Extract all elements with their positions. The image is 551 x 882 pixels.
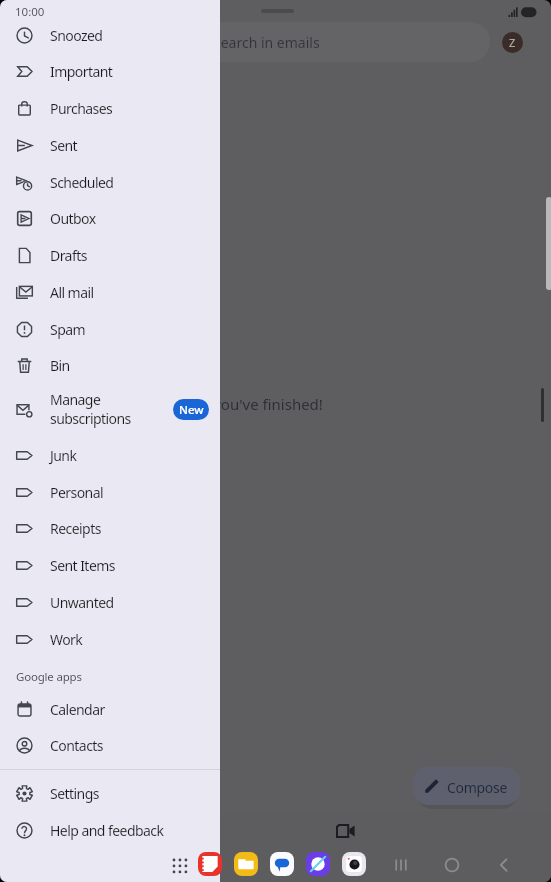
button[interactable]: browser xyxy=(306,852,330,876)
button[interactable]: files xyxy=(234,852,258,876)
button[interactable] xyxy=(100,22,490,62)
staticText: Snoozed xyxy=(50,26,103,45)
button[interactable]: messages xyxy=(270,852,294,876)
button[interactable]: All mail xyxy=(0,274,220,310)
button[interactable]: Scheduled xyxy=(0,164,220,200)
staticText: Sent Items xyxy=(50,556,115,575)
button[interactable]: Home xyxy=(439,852,465,878)
button[interactable]: Manage subscriptions xyxy=(0,388,220,432)
staticText: Junk xyxy=(50,446,77,465)
staticText: Drafts xyxy=(50,246,87,265)
button[interactable]: Recents xyxy=(388,852,414,878)
button[interactable]: Unwanted xyxy=(0,584,220,620)
staticText: All mail xyxy=(50,283,94,302)
button[interactable]: Work xyxy=(0,621,220,657)
staticText: Manage subscriptions xyxy=(50,390,131,428)
staticText: 10:00 xyxy=(15,4,45,20)
button[interactable]: Help and feedback xyxy=(0,812,220,848)
staticText: Work xyxy=(50,630,83,649)
button[interactable]: Account xyxy=(502,32,523,53)
staticText: Outbox xyxy=(50,209,96,228)
button[interactable]: Junk xyxy=(0,437,220,473)
staticText: Purchases xyxy=(50,99,113,118)
button[interactable]: Outbox xyxy=(0,200,220,236)
button[interactable]: Receipts xyxy=(0,510,220,546)
button[interactable]: Contacts xyxy=(0,727,220,763)
staticText: Compose xyxy=(447,778,507,797)
button[interactable]: Personal xyxy=(0,474,220,510)
staticText: Calendar xyxy=(50,700,105,719)
staticText: Search in emails xyxy=(213,33,320,52)
staticText: Help and feedback xyxy=(50,821,164,840)
button[interactable]: Purchases xyxy=(0,90,220,126)
staticText: Unwanted xyxy=(50,593,114,612)
button[interactable]: Important xyxy=(0,53,220,89)
button[interactable]: Back xyxy=(491,852,517,878)
button[interactable]: Sent xyxy=(0,127,220,163)
button[interactable]: Bin xyxy=(0,347,220,383)
staticText: Contacts xyxy=(50,736,103,755)
staticText: Z xyxy=(509,35,516,50)
staticText: Personal xyxy=(50,483,104,502)
staticText: Settings xyxy=(50,784,99,803)
staticText: Scheduled xyxy=(50,173,114,192)
staticText: All done, you've finished! xyxy=(148,394,323,414)
staticText: Bin xyxy=(50,356,70,375)
button[interactable]: Compose xyxy=(413,767,520,805)
staticText: Important xyxy=(50,62,113,81)
staticText: Google apps xyxy=(16,669,82,685)
button[interactable]: Spam xyxy=(0,311,220,347)
button[interactable]: Calendar xyxy=(0,691,220,727)
staticText: Sent xyxy=(50,136,78,155)
button[interactable]: All apps xyxy=(167,853,192,878)
button[interactable]: camera xyxy=(342,852,366,876)
staticText: New xyxy=(179,402,204,418)
button[interactable]: Snoozed xyxy=(0,17,220,53)
staticText: Receipts xyxy=(50,519,101,538)
button[interactable]: keep xyxy=(198,852,222,876)
button[interactable]: Sent Items xyxy=(0,547,220,583)
staticText: Spam xyxy=(50,320,86,339)
button[interactable]: Drafts xyxy=(0,237,220,273)
button[interactable]: Settings xyxy=(0,775,220,811)
